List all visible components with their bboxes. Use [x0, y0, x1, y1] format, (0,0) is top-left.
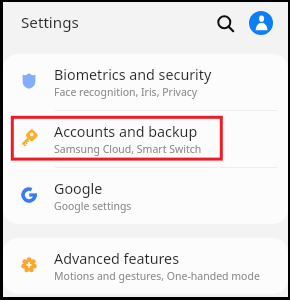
button[interactable]: Accounts and backup — [3, 111, 288, 167]
button[interactable]: Search — [211, 9, 241, 39]
button[interactable]: Account — [249, 11, 273, 35]
staticText: Motions and gestures, One-handed mode — [54, 269, 260, 283]
button[interactable]: Biometrics and security — [3, 54, 288, 110]
button[interactable]: Google — [3, 168, 288, 224]
staticText: Google — [54, 179, 103, 198]
staticText: Google settings — [54, 199, 132, 213]
staticText: Samsung Cloud, Smart Switch — [54, 142, 202, 156]
staticText: Settings — [21, 12, 79, 33]
staticText: Biometrics and security — [54, 65, 212, 84]
button[interactable]: Advanced features — [3, 238, 288, 294]
staticText: Face recognition, Iris, Privacy — [54, 85, 198, 99]
staticText: Accounts and backup — [54, 122, 198, 141]
staticText: Advanced features — [54, 249, 180, 268]
